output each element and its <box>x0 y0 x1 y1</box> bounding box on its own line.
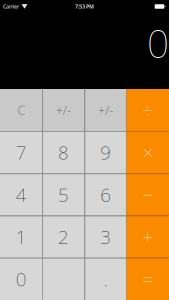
staticText: 0 <box>16 266 27 291</box>
staticText: 2 <box>58 224 69 249</box>
button[interactable]: 1 <box>0 216 42 258</box>
button[interactable]: 5 <box>42 173 84 216</box>
staticText: 0 <box>147 17 169 69</box>
button[interactable]: +/- <box>42 89 84 131</box>
button[interactable]: . <box>84 258 127 300</box>
staticText: 8 <box>58 140 69 165</box>
button[interactable]: + <box>127 216 169 258</box>
button[interactable]: 7 <box>0 131 42 173</box>
staticText: 6 <box>100 182 111 207</box>
staticText: = <box>142 266 153 291</box>
staticText: C <box>18 102 25 118</box>
staticText: 7:53 PM <box>75 3 94 10</box>
staticText: Carrier <box>3 3 19 10</box>
staticText: . <box>104 266 108 291</box>
button[interactable]: 8 <box>42 131 84 173</box>
staticText: ÷ <box>142 98 153 122</box>
staticText: 1 <box>16 224 27 249</box>
button[interactable]: 6 <box>84 173 127 216</box>
staticText: 4 <box>16 182 27 207</box>
button[interactable]: 9 <box>84 131 127 173</box>
staticText: − <box>142 182 153 207</box>
staticText: 7 <box>16 140 27 165</box>
staticText: +/- <box>56 102 71 118</box>
button[interactable]: +/- <box>84 89 127 131</box>
button[interactable]: × <box>127 131 169 173</box>
staticText: × <box>142 140 153 165</box>
button[interactable]: 0 <box>0 258 84 300</box>
staticText: 3 <box>100 224 111 249</box>
staticText: 5 <box>58 182 69 207</box>
button[interactable]: − <box>127 173 169 216</box>
button[interactable]: 2 <box>42 216 84 258</box>
button[interactable]: 4 <box>0 173 42 216</box>
staticText: + <box>142 224 153 249</box>
staticText: +/- <box>98 102 113 118</box>
button[interactable]: 3 <box>84 216 127 258</box>
button[interactable]: = <box>127 258 169 300</box>
button[interactable]: ÷ <box>127 89 169 131</box>
button[interactable]: C <box>0 89 42 131</box>
staticText: 9 <box>100 140 111 165</box>
